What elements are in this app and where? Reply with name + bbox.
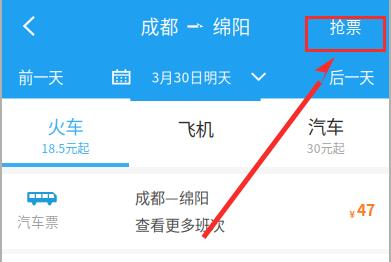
- button[interactable]: 后一天: [279, 52, 391, 101]
- staticText: 30元起: [307, 139, 345, 156]
- staticText: 18.5元起: [41, 139, 89, 156]
- staticText: 前一天: [18, 65, 63, 88]
- button[interactable]: 汽车票: [0, 174, 391, 249]
- staticText: 抢票: [329, 15, 361, 37]
- button[interactable]: 飞机: [130, 101, 261, 163]
- button[interactable]: Back: [0, 0, 62, 52]
- button[interactable]: 前一天: [0, 52, 112, 101]
- button[interactable]: 抢票: [305, 8, 386, 44]
- button[interactable]: 火车: [0, 101, 130, 163]
- staticText: 成都—绵阳: [135, 186, 209, 208]
- button[interactable]: 汽车: [261, 101, 391, 163]
- staticText: 查看更多班次: [135, 213, 225, 235]
- staticText: 绵阳: [212, 12, 250, 40]
- staticText: ¥: [349, 207, 355, 220]
- staticText: 47: [357, 198, 375, 220]
- staticText: 后一天: [329, 65, 374, 88]
- staticText: 汽车票: [17, 211, 59, 231]
- staticText: 火车: [47, 112, 83, 139]
- staticText: 3月30日明天: [152, 67, 232, 86]
- staticText: 飞机: [177, 115, 213, 142]
- button[interactable]: 3月30日明天: [112, 52, 267, 101]
- staticText: 汽车: [308, 112, 344, 139]
- staticText: 成都: [140, 12, 178, 40]
